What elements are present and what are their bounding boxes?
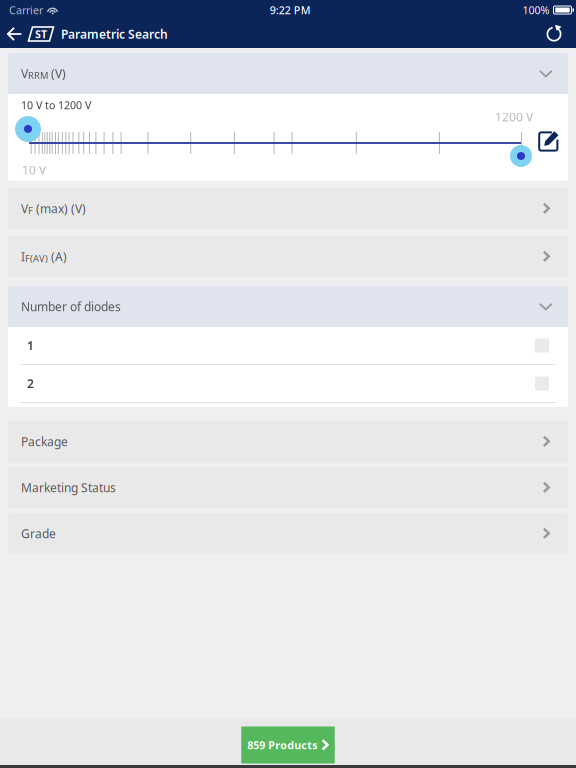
staticText: 2 [27,375,34,391]
staticText: 1 [27,337,34,353]
staticText: 10 V to 1200 V [21,98,91,112]
button[interactable]: Package [8,421,568,462]
staticText: RRM [28,69,48,82]
button[interactable]: 859 Products [241,726,335,763]
staticText: Carrier [9,3,43,17]
button[interactable]: V [8,188,568,229]
staticText: 859 Products [247,738,317,752]
staticText: (V) [48,65,66,81]
button[interactable]: Marketing Status [8,467,568,508]
button[interactable]: Refresh [539,20,570,48]
staticText: 100% [522,3,549,17]
button[interactable]: I [8,236,568,277]
staticText: (A) [48,248,67,264]
staticText: 10 V [22,162,46,178]
staticText: V [21,200,28,216]
button[interactable]: 2 [8,365,568,403]
button[interactable]: Grade [8,513,568,554]
staticText: Number of diodes [21,298,121,314]
staticText: Package [21,433,68,449]
button[interactable]: 1 [8,327,568,365]
staticText: I [21,248,25,264]
staticText: Parametric Search [61,26,168,42]
button[interactable]: Number of diodes [8,286,568,327]
staticText: F [28,204,33,217]
staticText: (max) (V) [33,200,86,216]
staticText: Marketing Status [21,479,116,495]
staticText: 1200 V [495,109,533,125]
staticText: 9:22 PM [270,3,311,17]
staticText: F(AV) [25,252,48,265]
staticText: ST [35,27,47,41]
button[interactable]: Back [1,20,27,48]
button[interactable]: V [8,53,568,94]
staticText: V [21,65,28,81]
staticText: Grade [21,525,56,541]
